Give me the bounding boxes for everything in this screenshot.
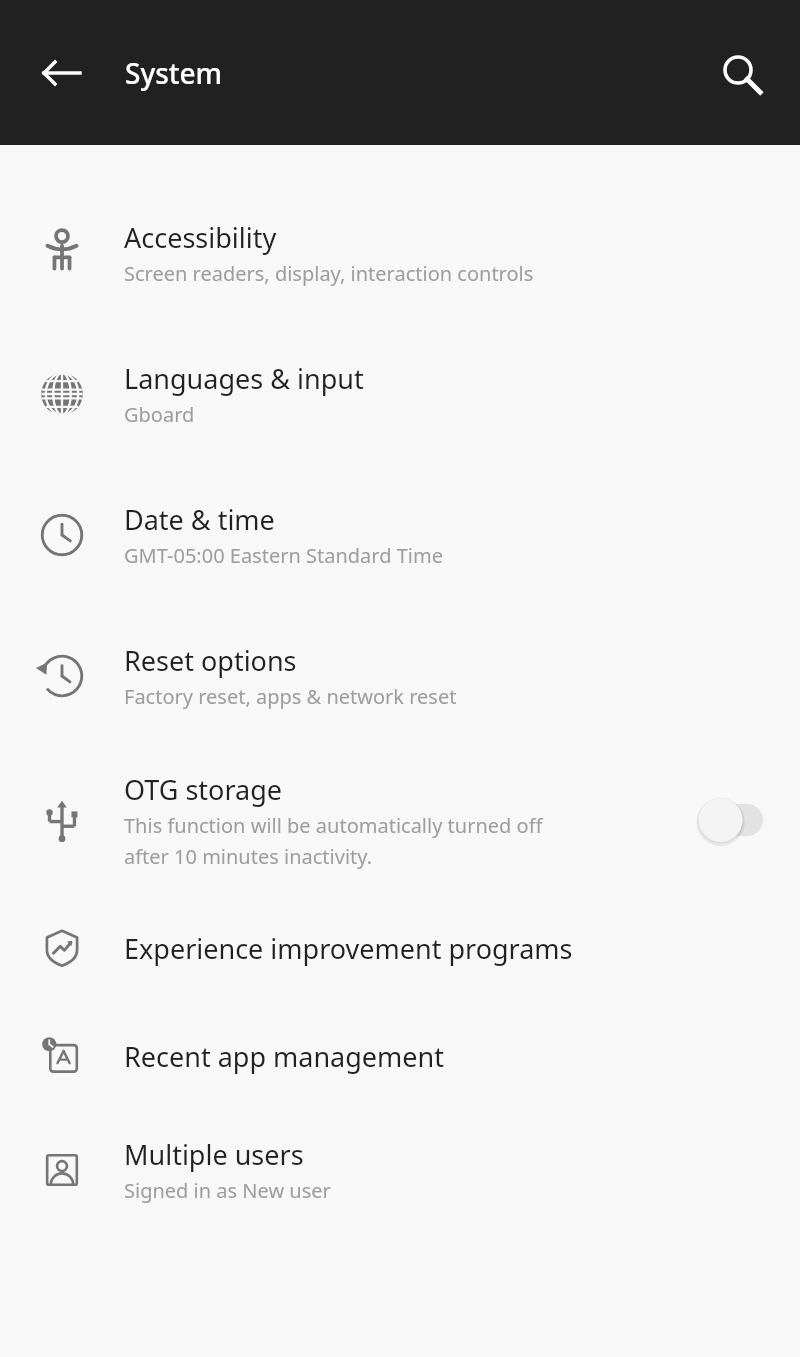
staticText: Screen readers, display, interaction con… <box>124 260 534 287</box>
button[interactable]: Back <box>20 31 104 115</box>
button[interactable]: Date & time <box>0 464 800 605</box>
staticText: Experience improvement programs <box>124 930 573 967</box>
staticText: System <box>125 54 223 92</box>
button[interactable]: Experience improvement programs <box>0 894 800 1002</box>
button[interactable]: OTG storage <box>0 746 800 894</box>
staticText: OTG storage <box>124 771 283 808</box>
staticText: Gboard <box>124 401 195 428</box>
button[interactable]: Accessibility <box>0 182 800 323</box>
staticText: This function will be automatically turn… <box>124 812 543 869</box>
staticText: Factory reset, apps & network reset <box>124 683 457 710</box>
button[interactable]: Recent app management <box>0 1002 800 1110</box>
staticText: GMT-05:00 Eastern Standard Time <box>124 542 443 569</box>
button[interactable]: Search <box>698 31 782 115</box>
button[interactable]: Languages & input <box>0 323 800 464</box>
staticText: Recent app management <box>124 1038 445 1075</box>
staticText: Signed in as New user <box>124 1177 331 1204</box>
staticText: Reset options <box>124 642 297 679</box>
staticText: Languages & input <box>124 360 364 397</box>
button[interactable]: Reset options <box>0 605 800 746</box>
staticText: Multiple users <box>124 1136 304 1173</box>
button[interactable]: Multiple users <box>0 1110 800 1230</box>
button[interactable]: OTG storage toggle <box>687 792 783 848</box>
staticText: Accessibility <box>124 219 277 256</box>
staticText: Date & time <box>124 501 275 538</box>
